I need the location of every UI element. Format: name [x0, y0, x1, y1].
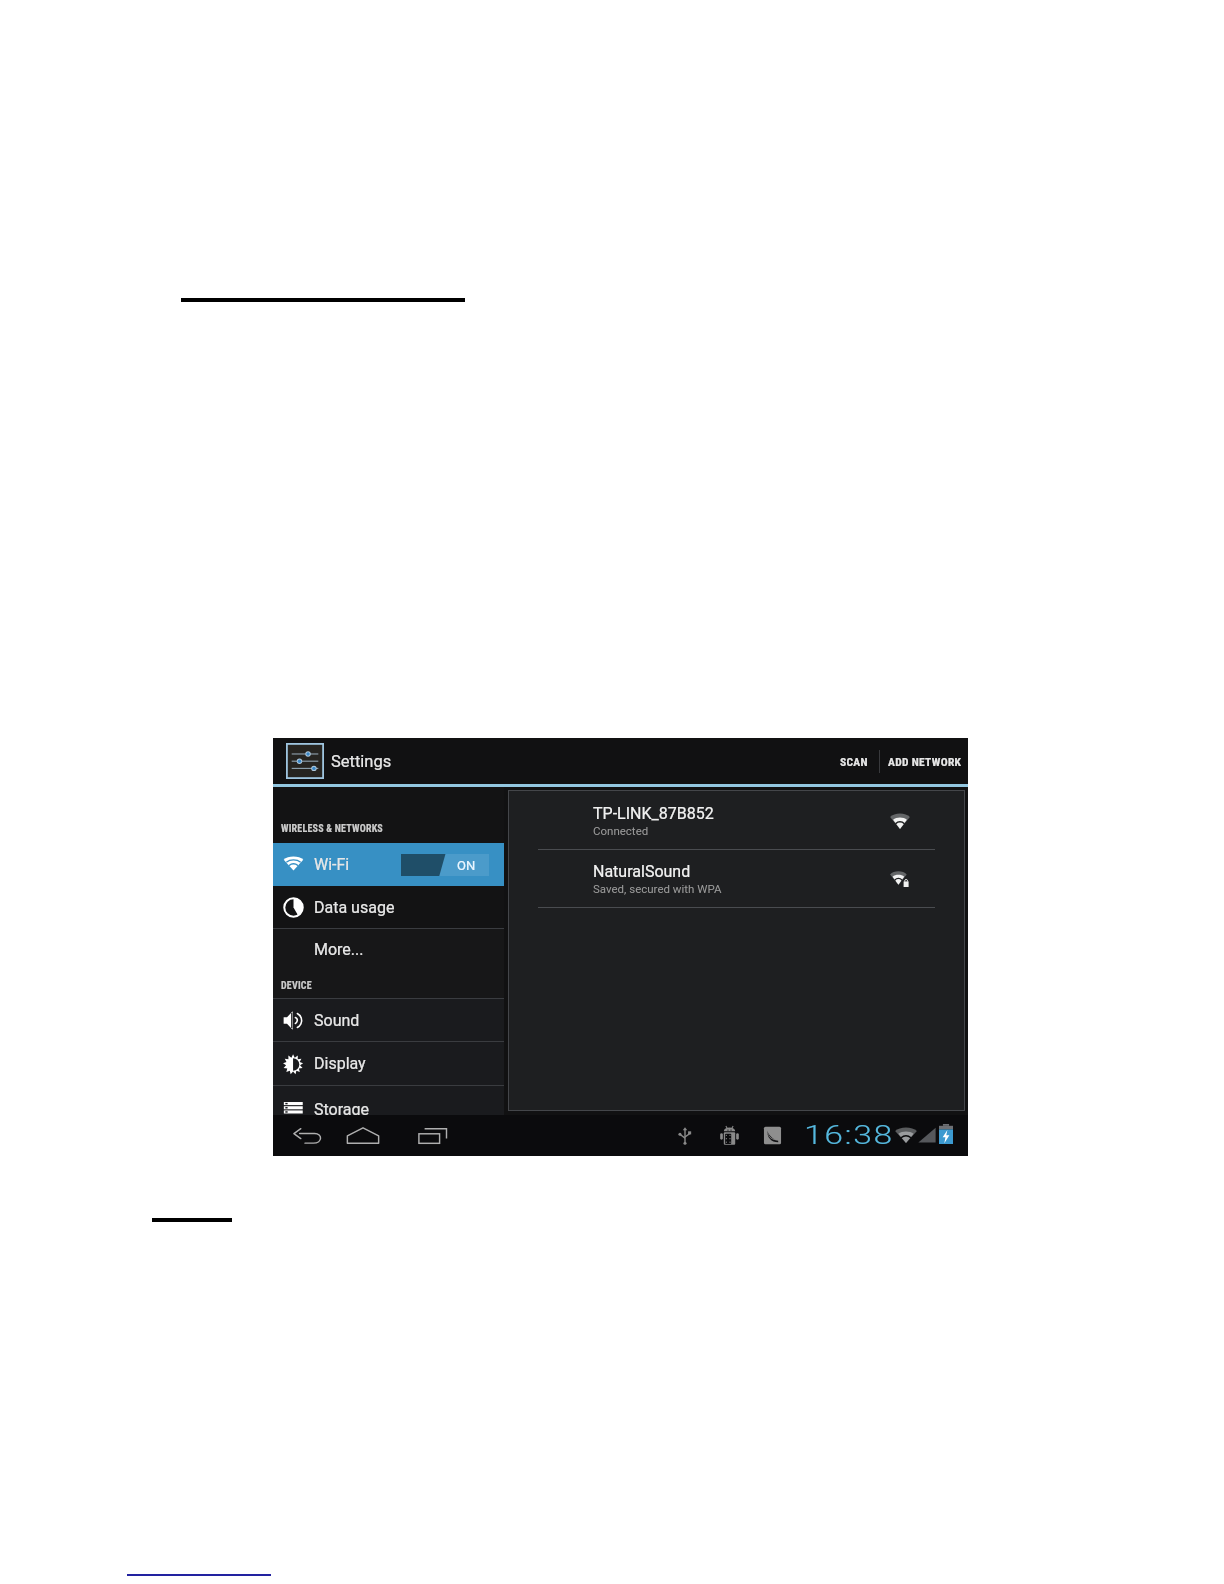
staticText: Data usage: [314, 898, 395, 917]
staticText: DEVICE: [281, 980, 312, 992]
staticText: NaturalSound: [593, 862, 691, 881]
button[interactable]: Data usage: [273, 886, 504, 928]
staticText: Connected: [593, 824, 649, 837]
button[interactable]: Recent apps: [407, 1115, 459, 1156]
staticText: WIRELESS & NETWORKS: [281, 823, 383, 835]
staticText: Saved, secured with WPA: [593, 882, 722, 895]
button[interactable]: Storage: [273, 1086, 504, 1115]
button[interactable]: SCAN: [818, 738, 879, 784]
button[interactable]: NaturalSound: [509, 850, 964, 907]
staticText: More...: [314, 940, 364, 959]
staticText: 16:38: [804, 1120, 895, 1150]
staticText: Settings: [331, 752, 392, 771]
button[interactable]: Wi-Fi: [273, 843, 504, 886]
button[interactable]: Home: [335, 1115, 391, 1156]
staticText: ON: [457, 858, 476, 873]
button[interactable]: Display: [273, 1042, 504, 1085]
button[interactable]: TP-LINK_87B852: [509, 791, 964, 849]
staticText: SCAN: [840, 755, 868, 768]
button[interactable]: More...: [273, 929, 504, 970]
button[interactable]: ON: [401, 854, 489, 876]
button[interactable]: Back: [282, 1115, 334, 1156]
staticText: Sound: [314, 1011, 360, 1030]
staticText: ADD NETWORK: [888, 755, 962, 768]
staticText: TP-LINK_87B852: [593, 804, 714, 823]
button[interactable]: Sound: [273, 999, 504, 1041]
staticText: Display: [314, 1054, 366, 1073]
staticText: Wi-Fi: [314, 855, 350, 874]
staticText: Storage: [314, 1100, 369, 1115]
button[interactable]: ADD NETWORK: [880, 738, 968, 784]
